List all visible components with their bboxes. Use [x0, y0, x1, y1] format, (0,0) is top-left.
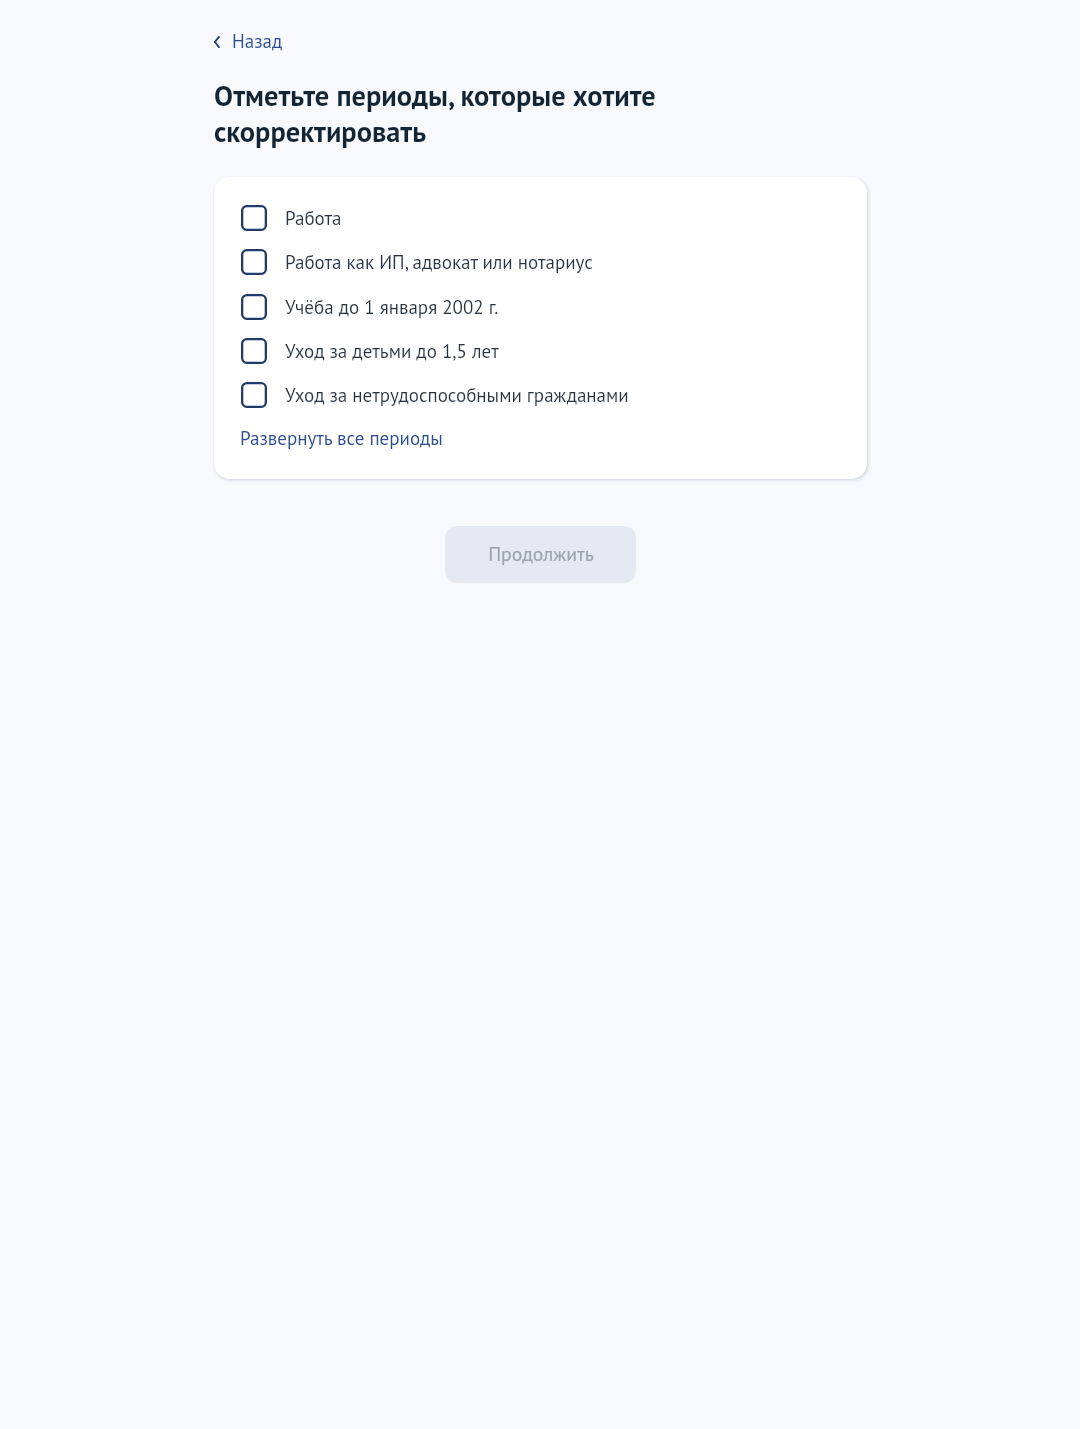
button[interactable]: Учёба до 1 января 2002 г. — [214, 285, 867, 329]
staticText: Работа — [285, 206, 342, 231]
staticText: Развернуть все периоды — [240, 426, 443, 451]
staticText: Учёба до 1 января 2002 г. — [285, 295, 499, 320]
button[interactable]: Уход за детьми до 1,5 лет — [214, 329, 867, 373]
staticText: Отметьте периоды, которые хотите скоррек… — [214, 77, 679, 150]
button[interactable]: Работа как ИП, адвокат или нотариус — [214, 240, 867, 284]
staticText: Продолжить — [488, 541, 594, 566]
button[interactable]: Уход за нетрудоспособными гражданами — [214, 373, 867, 417]
button[interactable]: Работа — [214, 196, 867, 240]
staticText: Работа как ИП, адвокат или нотариус — [285, 250, 593, 275]
staticText: Назад — [232, 29, 283, 54]
other: Назад — [213, 36, 220, 48]
staticText: Уход за детьми до 1,5 лет — [285, 339, 499, 364]
staticText: Уход за нетрудоспособными гражданами — [285, 383, 629, 408]
button[interactable]: Назад — [201, 21, 295, 62]
button[interactable]: Продолжить — [445, 526, 636, 583]
button[interactable]: Развернуть все периоды — [228, 418, 455, 459]
